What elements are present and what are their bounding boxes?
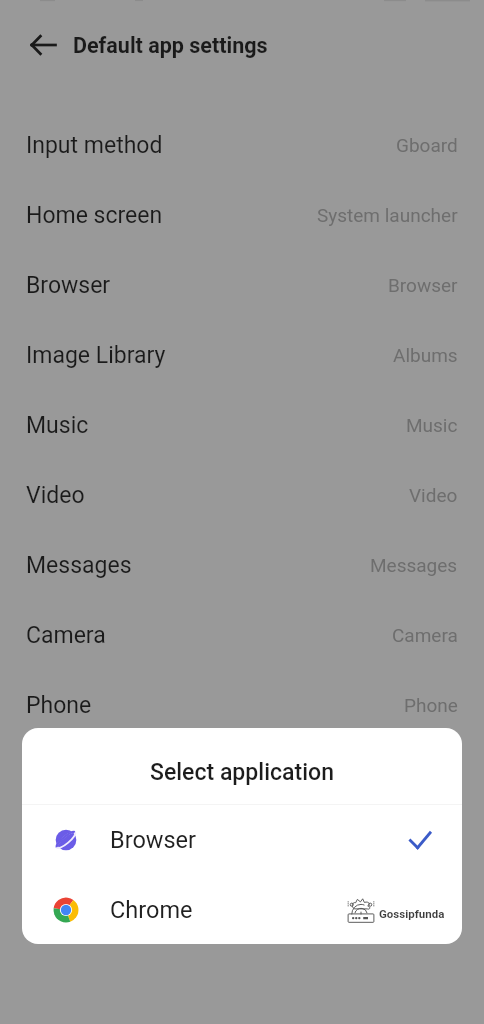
staticText: Albums <box>393 344 458 366</box>
button[interactable]: Input method <box>0 110 484 180</box>
staticText: Browser <box>26 272 111 299</box>
staticText: Image Library <box>26 342 166 369</box>
staticText: Input method <box>26 132 163 159</box>
button[interactable]: Camera <box>0 600 484 670</box>
staticText: Video <box>409 484 458 506</box>
button[interactable]: Music <box>0 390 484 460</box>
staticText: Phone <box>26 692 92 719</box>
staticText: Chrome <box>110 896 193 924</box>
staticText: System launcher <box>317 204 458 226</box>
button[interactable]: Image Library <box>0 320 484 390</box>
button[interactable]: Chrome <box>22 875 462 944</box>
staticText: Default app settings <box>73 33 268 58</box>
button[interactable]: Back <box>26 28 60 62</box>
button[interactable]: Messages <box>0 530 484 600</box>
button[interactable]: Video <box>0 460 484 530</box>
button[interactable]: Browser <box>0 250 484 320</box>
staticText: Select application <box>150 759 334 786</box>
staticText: Camera <box>26 622 106 649</box>
staticText: Browser <box>110 826 196 854</box>
staticText: Messages <box>370 554 458 576</box>
staticText: Browser <box>388 274 458 296</box>
staticText: Gossipfunda <box>379 907 445 920</box>
staticText: Music <box>406 414 458 436</box>
staticText: Phone <box>404 694 458 716</box>
staticText: Messages <box>26 552 132 579</box>
staticText: Video <box>26 482 85 509</box>
button[interactable]: Phone <box>0 670 484 740</box>
button[interactable]: Browser <box>22 805 462 875</box>
staticText: Camera <box>392 624 458 646</box>
staticText: Gboard <box>396 134 458 156</box>
button[interactable]: Home screen <box>0 180 484 250</box>
staticText: Home screen <box>26 202 163 229</box>
staticText: Music <box>26 412 89 439</box>
